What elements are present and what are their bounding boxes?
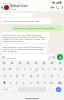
button[interactable]: Video call bbox=[50, 5, 55, 10]
staticText: Michael Scott bbox=[10, 4, 28, 8]
staticText: , bbox=[14, 88, 15, 92]
button[interactable]: Keyboard tool bbox=[10, 61, 14, 65]
staticText: Message bbox=[6, 56, 16, 59]
button[interactable]: More options bbox=[60, 4, 64, 11]
button[interactable]: b bbox=[34, 79, 41, 86]
staticText: v bbox=[30, 81, 32, 85]
button[interactable]: Message bbox=[1, 54, 56, 60]
staticText: h bbox=[37, 74, 39, 78]
staticText: t bbox=[30, 67, 32, 71]
staticText: w bbox=[9, 67, 12, 71]
staticText: o bbox=[54, 67, 56, 71]
staticText: b bbox=[37, 81, 39, 85]
button[interactable]: Back bbox=[0, 4, 4, 11]
button[interactable]: e bbox=[14, 65, 21, 72]
button[interactable]: Keyboard tool bbox=[34, 61, 38, 65]
staticText: z bbox=[10, 81, 12, 85]
staticText: r bbox=[24, 67, 26, 71]
button[interactable]: z bbox=[8, 79, 14, 86]
button[interactable]: Keyboard tool bbox=[58, 61, 62, 65]
button[interactable]: Backspace bbox=[55, 79, 64, 86]
staticText: n bbox=[44, 81, 46, 85]
button[interactable]: x bbox=[14, 79, 20, 86]
staticText: . bbox=[50, 88, 51, 92]
staticText: s bbox=[10, 74, 12, 78]
staticText: m bbox=[50, 81, 53, 85]
button[interactable]: w bbox=[7, 65, 14, 72]
staticText: i bbox=[49, 67, 50, 71]
staticText: j bbox=[44, 74, 45, 78]
button[interactable]: s bbox=[8, 72, 14, 79]
button[interactable]: v bbox=[27, 79, 34, 86]
staticText: c bbox=[23, 81, 25, 85]
staticText: One more thing: the design team shared n… bbox=[2, 33, 48, 42]
button[interactable]: Looks great, thanks for the update! bbox=[12, 25, 63, 31]
button[interactable]: i bbox=[46, 65, 52, 72]
button[interactable]: t bbox=[28, 65, 34, 72]
button[interactable]: Keyboard tool bbox=[50, 61, 54, 65]
staticText: f bbox=[23, 74, 24, 78]
button[interactable]: l bbox=[55, 72, 62, 79]
staticText: g bbox=[30, 74, 32, 78]
button[interactable]: r bbox=[21, 65, 28, 72]
button[interactable]: , bbox=[11, 86, 17, 93]
staticText: Looks great, thanks for the update! bbox=[13, 26, 55, 29]
button[interactable]: a bbox=[2, 72, 8, 79]
button[interactable]: n bbox=[41, 79, 48, 86]
staticText: y bbox=[36, 67, 38, 71]
button[interactable]: Enter bbox=[56, 87, 61, 92]
button[interactable]: g bbox=[27, 72, 34, 79]
button[interactable]: Keyboard tool bbox=[26, 61, 30, 65]
staticText: online bbox=[10, 8, 17, 11]
button[interactable]: Keyboard tool bbox=[2, 61, 6, 65]
button[interactable]: f bbox=[20, 72, 27, 79]
button[interactable]: c bbox=[20, 79, 27, 86]
staticText: ?123 bbox=[3, 88, 8, 91]
button[interactable]: Record voice message bbox=[57, 54, 63, 60]
button[interactable]: o bbox=[52, 65, 58, 72]
button[interactable]: h bbox=[34, 72, 41, 79]
staticText: k bbox=[51, 74, 53, 78]
button[interactable]: One more thing: the design team shared n… bbox=[1, 32, 49, 43]
button[interactable]: j bbox=[41, 72, 48, 79]
staticText: l bbox=[58, 74, 59, 78]
button[interactable]: m bbox=[48, 79, 55, 86]
staticText: d bbox=[16, 74, 18, 78]
staticText: a bbox=[4, 74, 6, 78]
staticText: 10:04 bbox=[3, 1, 10, 4]
button[interactable]: d bbox=[14, 72, 20, 79]
button[interactable]: k bbox=[48, 72, 55, 79]
button[interactable]: Keyboard tool bbox=[42, 61, 46, 65]
staticText: p bbox=[60, 67, 62, 71]
button[interactable]: q bbox=[0, 65, 7, 72]
button[interactable]: Keyboard tool bbox=[18, 61, 22, 65]
button[interactable]: ?123 bbox=[0, 86, 11, 93]
staticText: I will update the timeline and send a su… bbox=[2, 45, 46, 52]
button[interactable]: Voice call bbox=[55, 5, 60, 10]
staticText: q bbox=[3, 67, 5, 71]
staticText: u bbox=[42, 67, 44, 71]
staticText: I pushed the latest changes this morning… bbox=[2, 19, 50, 23]
button[interactable]: y bbox=[34, 65, 40, 72]
button[interactable]: I will update the timeline and send a su… bbox=[1, 44, 47, 53]
button[interactable]: p bbox=[58, 65, 64, 72]
button[interactable]: u bbox=[40, 65, 46, 72]
button[interactable]: I pushed the latest changes this morning… bbox=[1, 18, 51, 24]
staticText: e bbox=[17, 67, 19, 71]
staticText: x bbox=[16, 81, 18, 85]
button[interactable]: Shift bbox=[0, 79, 8, 86]
